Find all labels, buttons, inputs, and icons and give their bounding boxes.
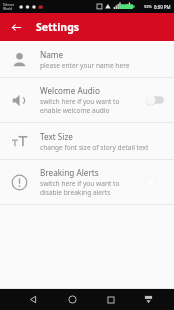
button[interactable]: Text Size: [0, 123, 174, 159]
button[interactable]: Welcome Audio: [0, 78, 174, 122]
staticText: please enter your name here: [40, 61, 130, 70]
staticText: Name: [40, 49, 64, 60]
button[interactable]: Name: [0, 41, 174, 77]
button[interactable]: Breaking Alerts: [0, 160, 174, 204]
staticText: Breaking Alerts: [40, 167, 99, 178]
button[interactable]: Recent apps: [100, 289, 122, 310]
staticText: switch here if you want to enable welcom…: [40, 97, 140, 115]
staticText: change font size of story detail text: [40, 143, 149, 152]
button[interactable]: Home: [61, 289, 83, 310]
staticText: Settings: [36, 20, 80, 34]
button[interactable]: Back: [22, 289, 44, 310]
staticText: Text Size: [40, 131, 73, 142]
staticText: Telenor: [3, 3, 15, 7]
button[interactable]: Back: [6, 17, 26, 37]
button[interactable]: Hide keyboard: [137, 289, 159, 310]
button[interactable]: Toggle: [144, 93, 166, 107]
staticText: Welcome Audio: [40, 85, 100, 96]
staticText: switch here if you want to disable break…: [40, 179, 140, 197]
staticText: 6:09 PM: [154, 4, 171, 10]
staticText: 92%: [144, 4, 152, 9]
staticText: World: [3, 7, 12, 11]
